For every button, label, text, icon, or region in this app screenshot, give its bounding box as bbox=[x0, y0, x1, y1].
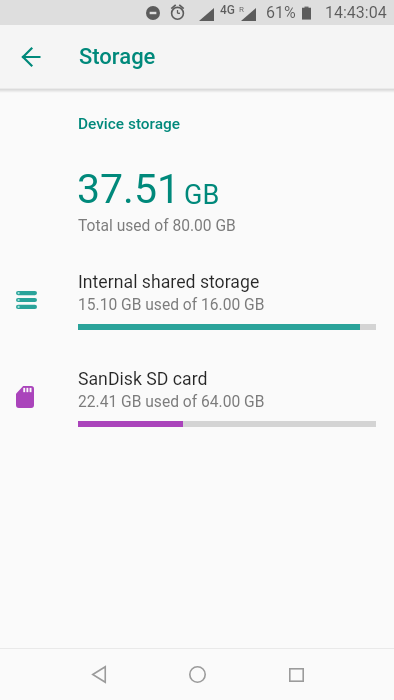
button[interactable]: Back bbox=[73, 649, 125, 700]
button[interactable]: Internal shared storage bbox=[0, 254, 394, 350]
staticText: R bbox=[239, 5, 244, 14]
staticText: GB bbox=[184, 179, 220, 211]
staticText: 37.51 bbox=[77, 165, 180, 213]
staticText: 4G bbox=[220, 3, 235, 17]
staticText: Internal shared storage bbox=[78, 272, 260, 293]
staticText: 61% bbox=[266, 3, 296, 22]
button[interactable]: SanDisk SD card bbox=[0, 351, 394, 447]
staticText: 14:43:04 bbox=[325, 3, 387, 22]
button[interactable]: Recents bbox=[270, 649, 322, 700]
button[interactable]: Navigate up bbox=[9, 35, 53, 79]
staticText: 22.41 GB used of 64.00 GB bbox=[78, 393, 265, 411]
button[interactable]: Home bbox=[171, 649, 223, 700]
staticText: Storage bbox=[79, 44, 156, 70]
staticText: SanDisk SD card bbox=[78, 369, 208, 390]
staticText: Device storage bbox=[78, 115, 181, 133]
staticText: 15.10 GB used of 16.00 GB bbox=[78, 296, 265, 314]
staticText: Total used of 80.00 GB bbox=[78, 217, 236, 235]
